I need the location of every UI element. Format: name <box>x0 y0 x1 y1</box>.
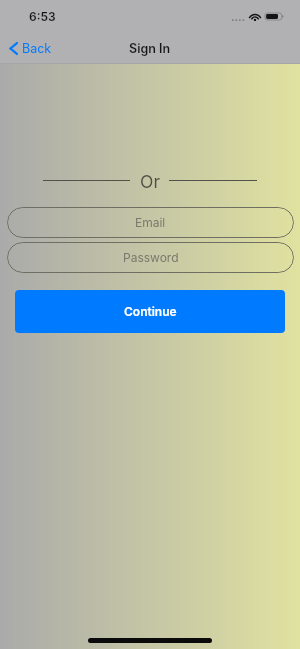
button[interactable]: Continue <box>15 290 285 333</box>
button[interactable]: Back <box>0 37 60 59</box>
staticText: Email <box>135 215 166 230</box>
staticText: Sign In <box>129 41 171 56</box>
button[interactable]: Password <box>7 242 294 273</box>
button[interactable]: Email <box>7 207 294 238</box>
staticText: 6:53 <box>29 9 56 24</box>
staticText: Back <box>22 41 52 56</box>
other: Home indicator <box>88 638 212 643</box>
other: Back <box>9 42 18 55</box>
staticText: Password <box>123 250 179 265</box>
staticText: Continue <box>124 304 177 319</box>
staticText: Or <box>0 171 300 192</box>
